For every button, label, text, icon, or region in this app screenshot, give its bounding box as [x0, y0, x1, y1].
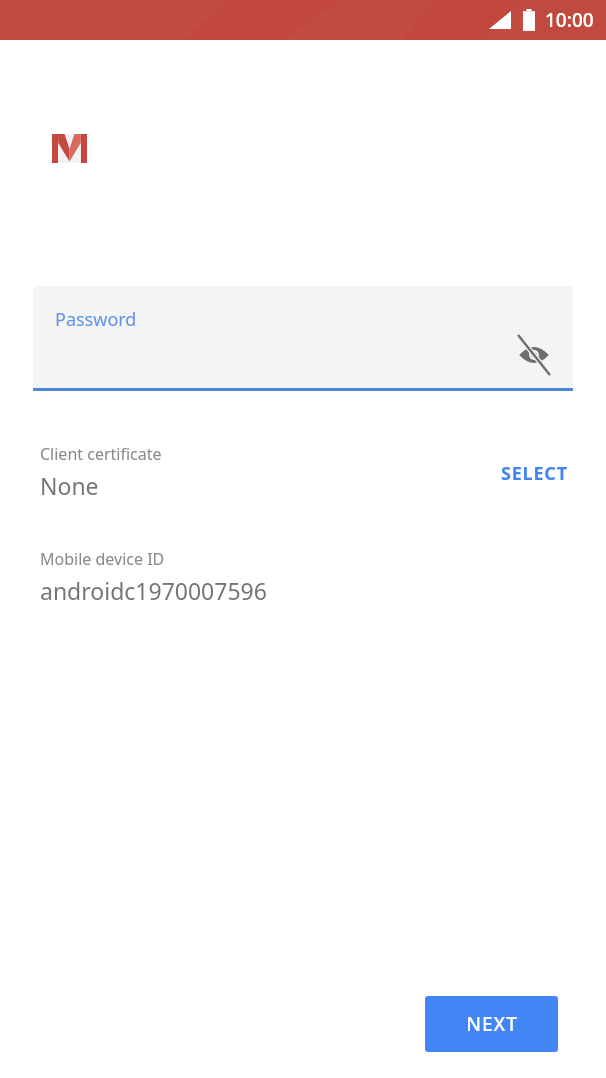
staticText: Password: [55, 307, 137, 332]
staticText: None: [40, 470, 99, 501]
button[interactable]: Password: [33, 286, 573, 391]
button[interactable]: SELECT: [487, 451, 582, 496]
button[interactable]: Show password: [513, 334, 555, 376]
staticText: 10:00: [545, 7, 594, 33]
staticText: Client certificate: [40, 443, 162, 465]
staticText: SELECT: [501, 461, 568, 486]
staticText: androidc1970007596: [40, 575, 267, 606]
staticText: NEXT: [466, 1011, 518, 1037]
button[interactable]: NEXT: [425, 996, 558, 1052]
staticText: Mobile device ID: [40, 548, 165, 570]
